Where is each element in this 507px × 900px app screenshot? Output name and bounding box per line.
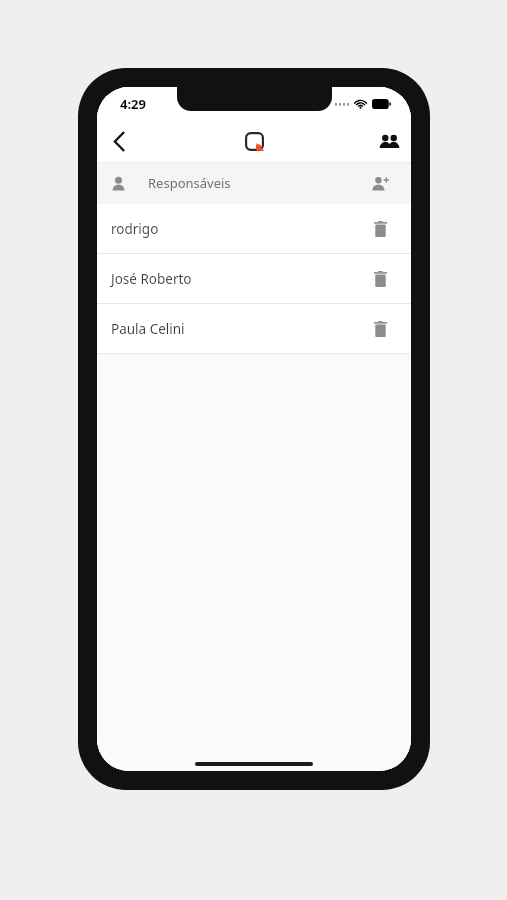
button[interactable]: Group members — [367, 120, 411, 162]
button[interactable]: Back — [97, 120, 141, 162]
staticText: José Roberto — [111, 270, 192, 288]
staticText: 4:29 — [120, 95, 146, 113]
button[interactable]: rodrigo — [97, 204, 411, 253]
button[interactable]: Delete José Roberto — [363, 262, 397, 296]
staticText: rodrigo — [111, 220, 159, 238]
button[interactable]: Delete Paula Celini — [363, 312, 397, 346]
button[interactable]: José Roberto — [97, 254, 411, 303]
button[interactable]: Paula Celini — [97, 304, 411, 353]
button[interactable]: Delete rodrigo — [363, 212, 397, 246]
staticText: Responsáveis — [148, 174, 231, 192]
button[interactable]: Add person — [363, 166, 397, 200]
button[interactable]: App logo — [234, 121, 274, 161]
staticText: Paula Celini — [111, 320, 185, 338]
